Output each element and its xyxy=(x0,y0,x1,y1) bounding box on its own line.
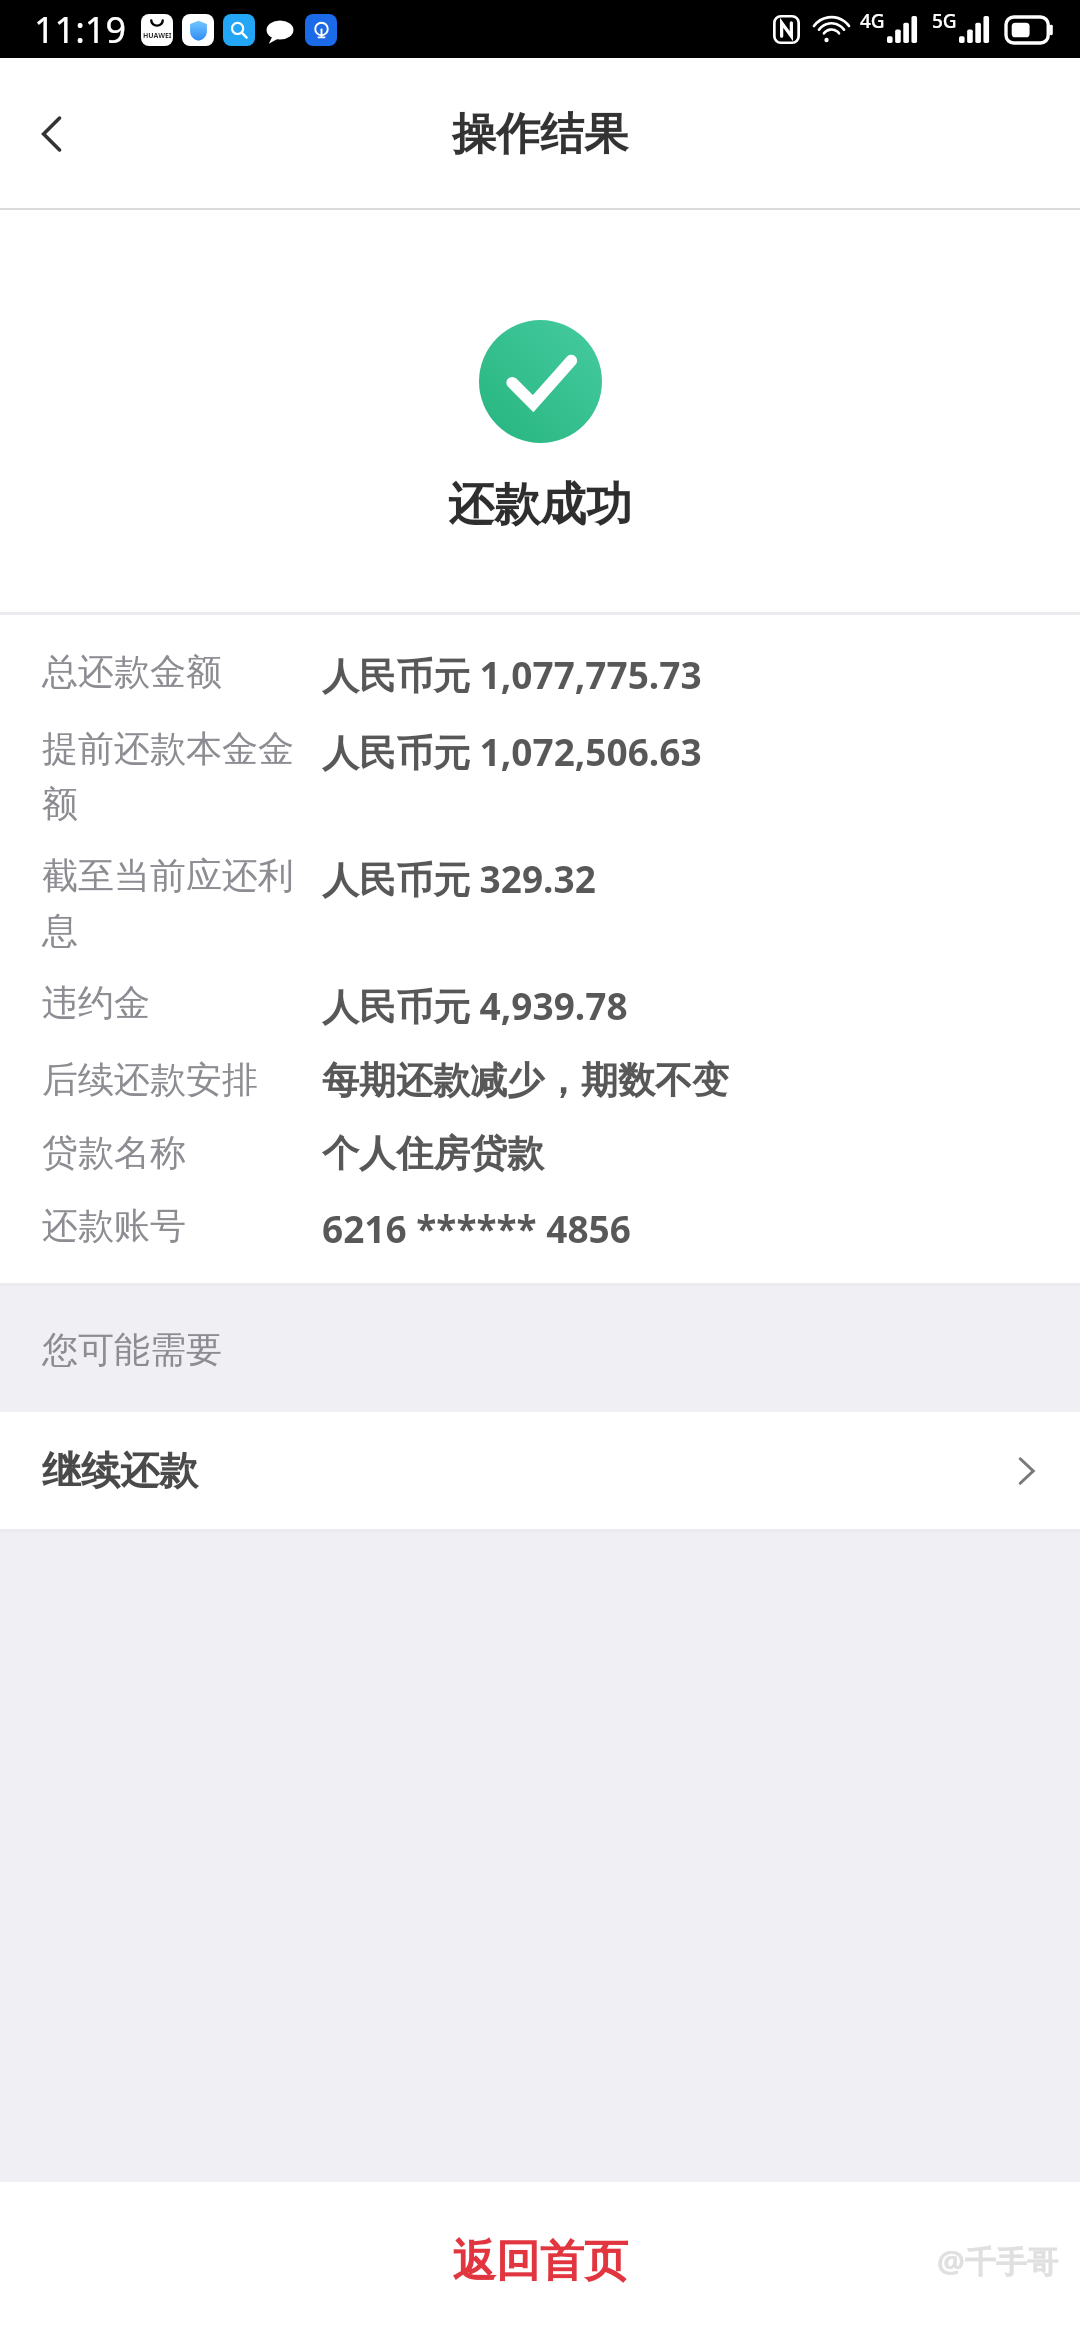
staticText: 操作结果 xyxy=(452,107,628,162)
staticText: 人民币元 1,077,775.73 xyxy=(322,649,702,700)
staticText: 后续还款安排 xyxy=(42,1057,258,1102)
staticText: HUAWEI xyxy=(143,31,172,41)
staticText: 您可能需要 xyxy=(42,1327,222,1372)
staticText: 还款账号 xyxy=(42,1203,186,1248)
staticText: 还款成功 xyxy=(448,476,632,534)
staticText: 人民币元 329.32 xyxy=(322,853,596,904)
staticText: 提前还款本金金额 xyxy=(42,726,322,827)
staticText: 违约金 xyxy=(42,980,150,1025)
staticText: 5G xyxy=(932,8,957,34)
staticText: 11:19 xyxy=(34,5,127,54)
staticText: 人民币元 1,072,506.63 xyxy=(322,726,702,777)
staticText: 贷款名称 xyxy=(42,1130,186,1175)
button[interactable]: 继续还款 xyxy=(0,1412,1080,1529)
staticText: 返回首页 xyxy=(452,2234,628,2289)
staticText: 个人住房贷款 xyxy=(322,1130,544,1177)
staticText: 人民币元 4,939.78 xyxy=(322,980,628,1031)
staticText: @千手哥 xyxy=(937,2240,1058,2282)
staticText: 每期还款减少，期数不变 xyxy=(322,1057,729,1104)
staticText: 截至当前应还利息 xyxy=(42,853,322,954)
button[interactable]: 返回首页 xyxy=(0,2205,1080,2317)
staticText: 4G xyxy=(860,8,885,34)
staticText: 总还款金额 xyxy=(42,649,222,694)
staticText: 继续还款 xyxy=(42,1446,198,1495)
staticText: 6216 ****** 4856 xyxy=(322,1203,631,1253)
button[interactable]: Back xyxy=(0,82,104,186)
